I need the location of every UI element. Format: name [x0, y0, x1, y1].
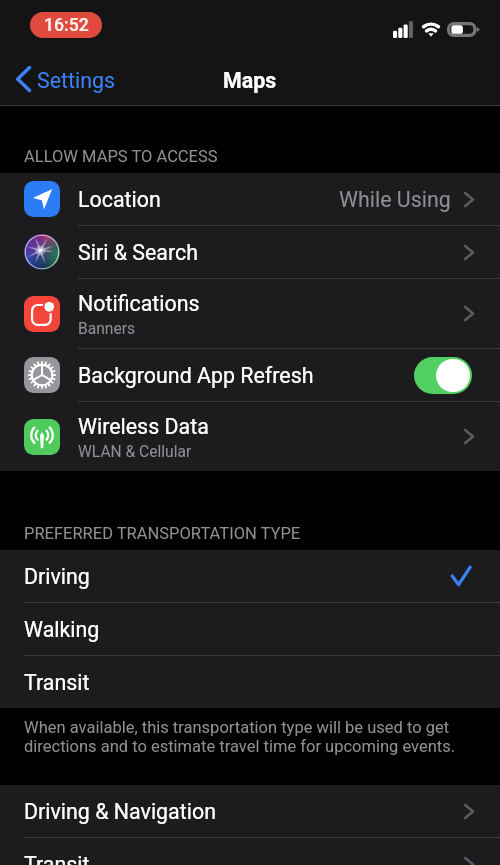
- button[interactable]: Wireless Data: [0, 402, 500, 471]
- staticText: Location: [78, 187, 161, 212]
- staticText: Wireless Data: [78, 414, 209, 439]
- staticText: Settings: [37, 68, 116, 93]
- button[interactable]: Settings: [0, 62, 126, 100]
- staticText: When available, this transportation type…: [24, 718, 476, 756]
- button[interactable]: Transit: [0, 656, 500, 708]
- staticText: Background App Refresh: [78, 363, 314, 388]
- button[interactable]: Siri & Search: [0, 226, 500, 278]
- staticText: Walking: [24, 617, 100, 642]
- staticText: While Using: [339, 187, 451, 212]
- button[interactable]: Location: [0, 173, 500, 225]
- staticText: Transit: [24, 852, 90, 865]
- button[interactable]: Transit: [0, 838, 500, 865]
- button[interactable]: Walking: [0, 603, 500, 655]
- staticText: Notifications: [78, 291, 200, 316]
- button[interactable]: Driving & Navigation: [0, 785, 500, 837]
- button[interactable]: Background App Refresh: [0, 349, 500, 401]
- staticText: Siri & Search: [78, 240, 198, 265]
- staticText: ALLOW MAPS TO ACCESS: [24, 147, 218, 166]
- staticText: WLAN & Cellular: [78, 443, 192, 461]
- staticText: 16:52: [44, 15, 89, 36]
- staticText: Banners: [78, 320, 136, 338]
- button[interactable]: Notifications: [0, 279, 500, 348]
- staticText: PREFERRED TRANSPORTATION TYPE: [24, 524, 301, 543]
- staticText: Transit: [24, 670, 90, 695]
- staticText: Driving: [24, 564, 90, 589]
- staticText: Driving & Navigation: [24, 799, 216, 824]
- button[interactable]: Background App Refresh toggle: [414, 357, 472, 394]
- button[interactable]: Driving: [0, 550, 500, 602]
- staticText: Maps: [223, 68, 277, 93]
